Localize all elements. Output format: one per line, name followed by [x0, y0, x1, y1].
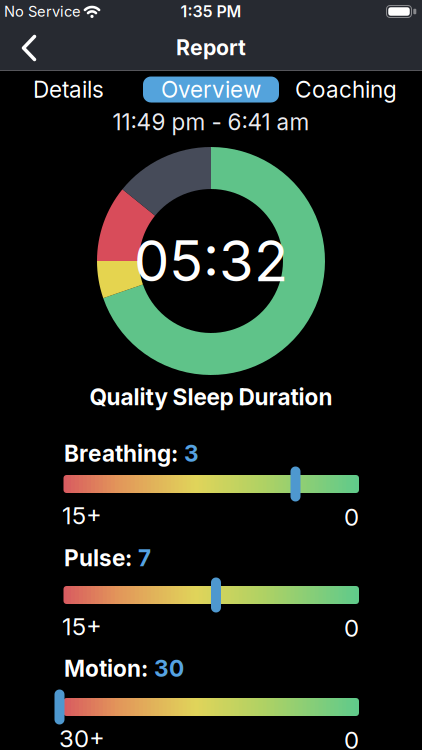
staticText: 15+	[62, 612, 102, 641]
staticText: Quality Sleep Duration	[89, 384, 332, 410]
staticText: Breathing:	[64, 440, 178, 467]
staticText: 11:49 pm - 6:41 am	[112, 109, 309, 135]
staticText: 1:35 PM	[180, 2, 241, 21]
staticText: Details	[33, 76, 104, 103]
button[interactable]: Coaching	[291, 74, 401, 104]
staticText: No Service	[4, 3, 81, 20]
staticText: Pulse:	[64, 545, 132, 571]
button[interactable]	[63, 586, 359, 604]
staticText: 0	[344, 503, 359, 531]
staticText: 15+	[62, 501, 102, 530]
staticText: 7	[138, 545, 151, 571]
button[interactable]	[63, 698, 359, 716]
staticText: Report	[176, 35, 246, 60]
staticText: 30+	[59, 724, 105, 750]
button[interactable]: Overview	[143, 76, 279, 102]
staticText: Overview	[161, 76, 261, 103]
button[interactable]	[63, 475, 359, 493]
button[interactable]	[10, 28, 50, 68]
staticText: Coaching	[295, 76, 397, 103]
staticText: 0	[344, 726, 359, 750]
staticText: 05:32	[134, 228, 288, 294]
staticText: 30	[154, 655, 184, 682]
button[interactable]: Details	[13, 74, 123, 104]
staticText: 3	[184, 440, 199, 467]
staticText: Motion:	[64, 655, 148, 682]
staticText: 0	[344, 614, 359, 642]
